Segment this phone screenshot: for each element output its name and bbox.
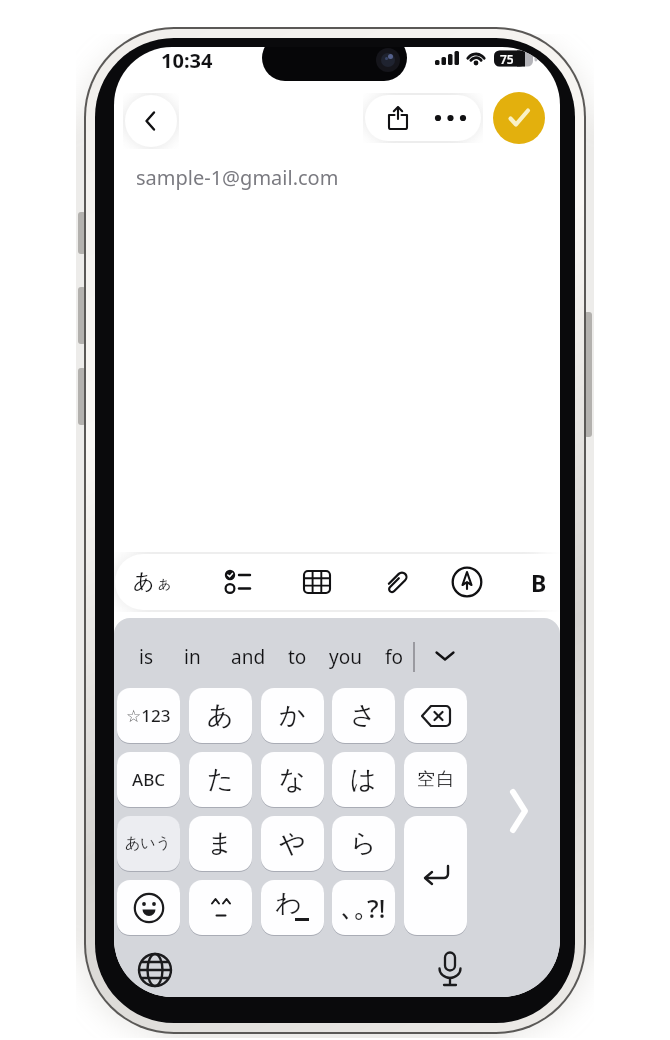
button[interactable] xyxy=(508,788,532,834)
button[interactable] xyxy=(125,95,177,147)
button[interactable] xyxy=(404,688,467,743)
button[interactable]: ､｡?! xyxy=(332,880,395,935)
staticText: 75 xyxy=(500,51,514,67)
button[interactable]: あいう xyxy=(117,816,180,871)
button[interactable] xyxy=(117,880,180,935)
staticText: ､｡?! xyxy=(341,890,386,925)
button[interactable]: な xyxy=(261,752,324,807)
button[interactable] xyxy=(135,950,175,990)
button[interactable] xyxy=(427,95,475,141)
staticText: sample-1@gmail.com xyxy=(136,164,339,191)
staticText: 空白 xyxy=(416,768,456,791)
button[interactable]: 空白 xyxy=(404,752,467,807)
button[interactable]: and xyxy=(231,644,266,670)
staticText: か xyxy=(279,699,306,732)
staticText: B xyxy=(531,567,547,598)
button[interactable]: は xyxy=(332,752,395,807)
button[interactable]: た xyxy=(189,752,252,807)
staticText: 10:34 xyxy=(161,47,213,74)
staticText: ぁ xyxy=(156,573,173,593)
button[interactable]: ま xyxy=(189,816,252,871)
staticText: あ xyxy=(133,568,155,594)
button[interactable]: わ xyxy=(261,880,324,935)
staticText: ま xyxy=(207,827,234,860)
button[interactable] xyxy=(294,554,340,610)
staticText: は xyxy=(350,763,377,796)
staticText: な xyxy=(279,763,306,796)
button[interactable]: you xyxy=(329,644,362,670)
button[interactable]: is xyxy=(139,644,154,670)
button[interactable]: ☆123 xyxy=(117,688,180,743)
staticText: ABC xyxy=(132,768,166,791)
button[interactable] xyxy=(215,554,261,610)
staticText: や xyxy=(279,827,306,860)
staticText: わ xyxy=(275,887,302,920)
button[interactable]: か xyxy=(261,688,324,743)
button[interactable]: in xyxy=(184,644,201,670)
staticText: た xyxy=(207,763,234,796)
button[interactable] xyxy=(404,816,467,935)
button[interactable]: B xyxy=(522,554,556,610)
button[interactable]: to xyxy=(288,644,307,670)
button[interactable]: fo xyxy=(385,644,404,670)
button[interactable] xyxy=(444,554,490,610)
button[interactable]: ABC xyxy=(117,752,180,807)
staticText: あ xyxy=(207,699,234,732)
button[interactable] xyxy=(493,92,545,144)
button[interactable]: あ xyxy=(189,688,252,743)
button[interactable] xyxy=(374,554,420,610)
button[interactable] xyxy=(373,95,423,141)
button[interactable]: や xyxy=(261,816,324,871)
staticText: ら xyxy=(350,827,377,860)
button[interactable] xyxy=(189,880,252,935)
button[interactable]: ら xyxy=(332,816,395,871)
button[interactable]: あ xyxy=(133,554,179,610)
button[interactable]: さ xyxy=(332,688,395,743)
staticText: ☆123 xyxy=(126,704,171,727)
staticText: さ xyxy=(350,699,377,732)
button[interactable] xyxy=(430,948,470,992)
staticText: あいう xyxy=(125,834,172,853)
button[interactable] xyxy=(434,650,456,662)
